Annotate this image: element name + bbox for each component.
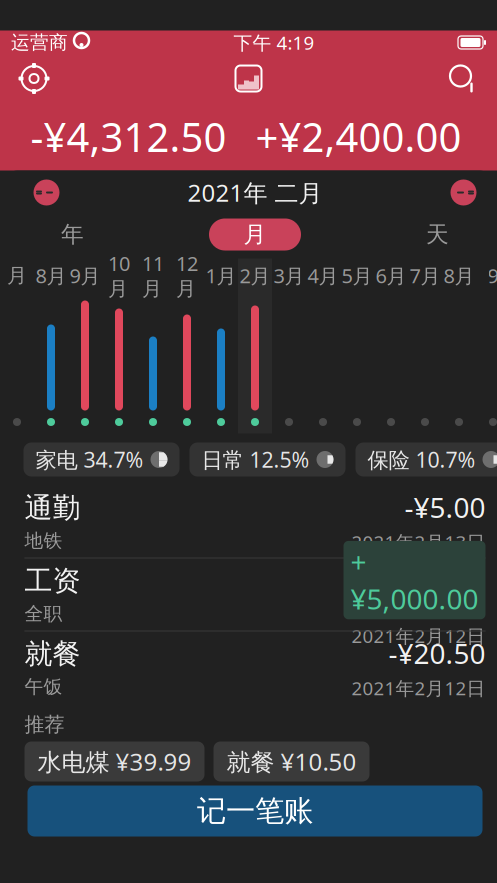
button[interactable]: 年 [12,218,132,250]
button[interactable]: 4月 [306,258,340,433]
button[interactable]: 9 [476,258,497,433]
staticText: 3月 [273,262,304,289]
staticText: 10月 [108,250,130,301]
button[interactable]: 1月 [204,258,238,433]
staticText: 7月 [409,262,440,289]
button[interactable]: 上一月 [23,172,69,212]
button[interactable]: 搜索 [437,54,489,102]
button[interactable]: 11月 [136,258,170,433]
button[interactable]: 保险 10.7% [355,442,497,476]
staticText: +¥5,000.00 [350,543,478,617]
staticText: 工资 [24,564,80,598]
staticText: 就餐 ¥10.50 [226,746,356,777]
staticText: 6月 [375,262,406,289]
staticText: 运营商 [11,31,68,54]
staticText: 2021年2月12日 [351,676,485,700]
button[interactable]: 6月 [374,258,408,433]
button[interactable]: 就餐 [6,631,497,703]
staticText: 下午 4:19 [233,30,314,55]
staticText: -¥20.50 [388,634,485,672]
button[interactable]: 设置 [8,54,60,102]
staticText: 4月 [307,262,338,289]
button[interactable]: -¥4,312.50 [18,110,238,162]
staticText: 12月 [176,250,198,301]
staticText: 天 [426,221,449,248]
staticText: 日常 12.5% [201,445,309,474]
button[interactable]: 3月 [272,258,306,433]
button[interactable]: 10月 [102,258,136,433]
button[interactable]: 7月 [408,258,442,433]
staticText: 2021年2月13日 [351,530,485,554]
staticText: 2021年2月12日 [351,623,485,648]
button[interactable]: 通勤 [6,485,497,557]
staticText: 9 [487,262,497,289]
staticText: +¥2,400.00 [255,110,461,163]
staticText: 通勤 [24,491,80,525]
button[interactable]: 水电煤 ¥39.99 [24,741,204,781]
button[interactable]: 12月 [170,258,204,433]
button[interactable]: 下一月 [440,172,486,212]
staticText: 11月 [142,250,164,301]
staticText: 地铁 [24,529,62,552]
button[interactable]: 工资 [6,558,497,630]
staticText: 9月 [69,262,100,289]
button[interactable]: 就餐 ¥10.50 [213,741,369,781]
button[interactable]: 月 [209,218,301,250]
staticText: 8月 [35,262,66,289]
staticText: 记一笔账 [197,793,313,829]
staticText: 午饭 [24,675,62,698]
button[interactable]: 2月 [238,258,272,433]
staticText: 保险 10.7% [367,445,475,474]
staticText: 2021年 二月 [187,177,322,208]
button[interactable]: 图表 [222,54,274,102]
button[interactable]: 8月 [442,258,476,433]
staticText: 家电 34.7% [35,445,143,474]
staticText: 全职 [24,602,62,625]
staticText: 水电煤 ¥39.99 [37,746,191,777]
button[interactable]: 月 [0,258,34,433]
staticText: 月 [243,221,266,248]
button[interactable]: 8月 [34,258,68,433]
button[interactable]: 9月 [68,258,102,433]
button[interactable]: +¥2,400.00 [238,110,478,162]
staticText: 推荐 [24,712,64,737]
staticText: 就餐 [24,637,80,671]
staticText: 年 [61,221,84,248]
staticText: 5月 [341,262,372,289]
staticText: -¥5.00 [404,488,485,526]
button[interactable]: 记一笔账 [27,785,482,836]
button[interactable]: 5月 [340,258,374,433]
staticText: 1月 [205,262,236,289]
button[interactable]: 天 [377,218,497,250]
staticText: 月 [7,263,27,288]
staticText: -¥4,312.50 [30,110,226,163]
staticText: 8月 [443,262,474,289]
button[interactable]: 日常 12.5% [189,442,345,476]
button[interactable]: 家电 34.7% [23,442,179,476]
staticText: 2月 [239,262,270,289]
